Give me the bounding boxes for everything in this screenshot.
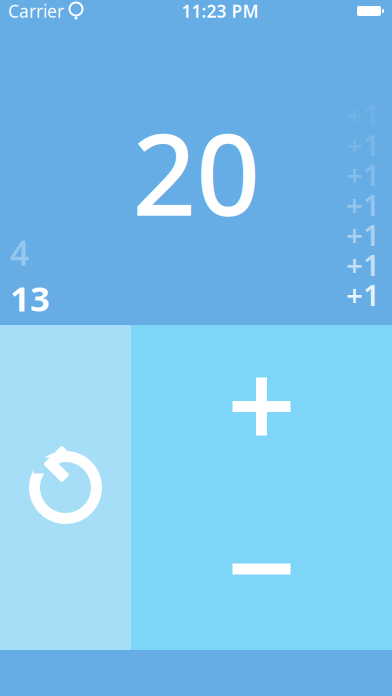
staticText: +1 <box>346 215 380 254</box>
staticText: 11:23 PM <box>181 0 258 22</box>
staticText: 13 <box>10 275 50 321</box>
staticText: 20 <box>132 98 260 247</box>
button[interactable]: Decrease <box>131 488 392 650</box>
staticText: 4 <box>10 231 29 275</box>
staticText: +1 <box>346 185 380 224</box>
button[interactable]: Increase <box>131 325 392 488</box>
staticText: +1 <box>346 245 380 284</box>
staticText: Carrier <box>8 0 64 22</box>
staticText: +1 <box>346 275 380 314</box>
button[interactable]: Undo <box>0 325 131 650</box>
staticText: +1 <box>346 155 380 194</box>
staticText: +1 <box>346 125 380 164</box>
